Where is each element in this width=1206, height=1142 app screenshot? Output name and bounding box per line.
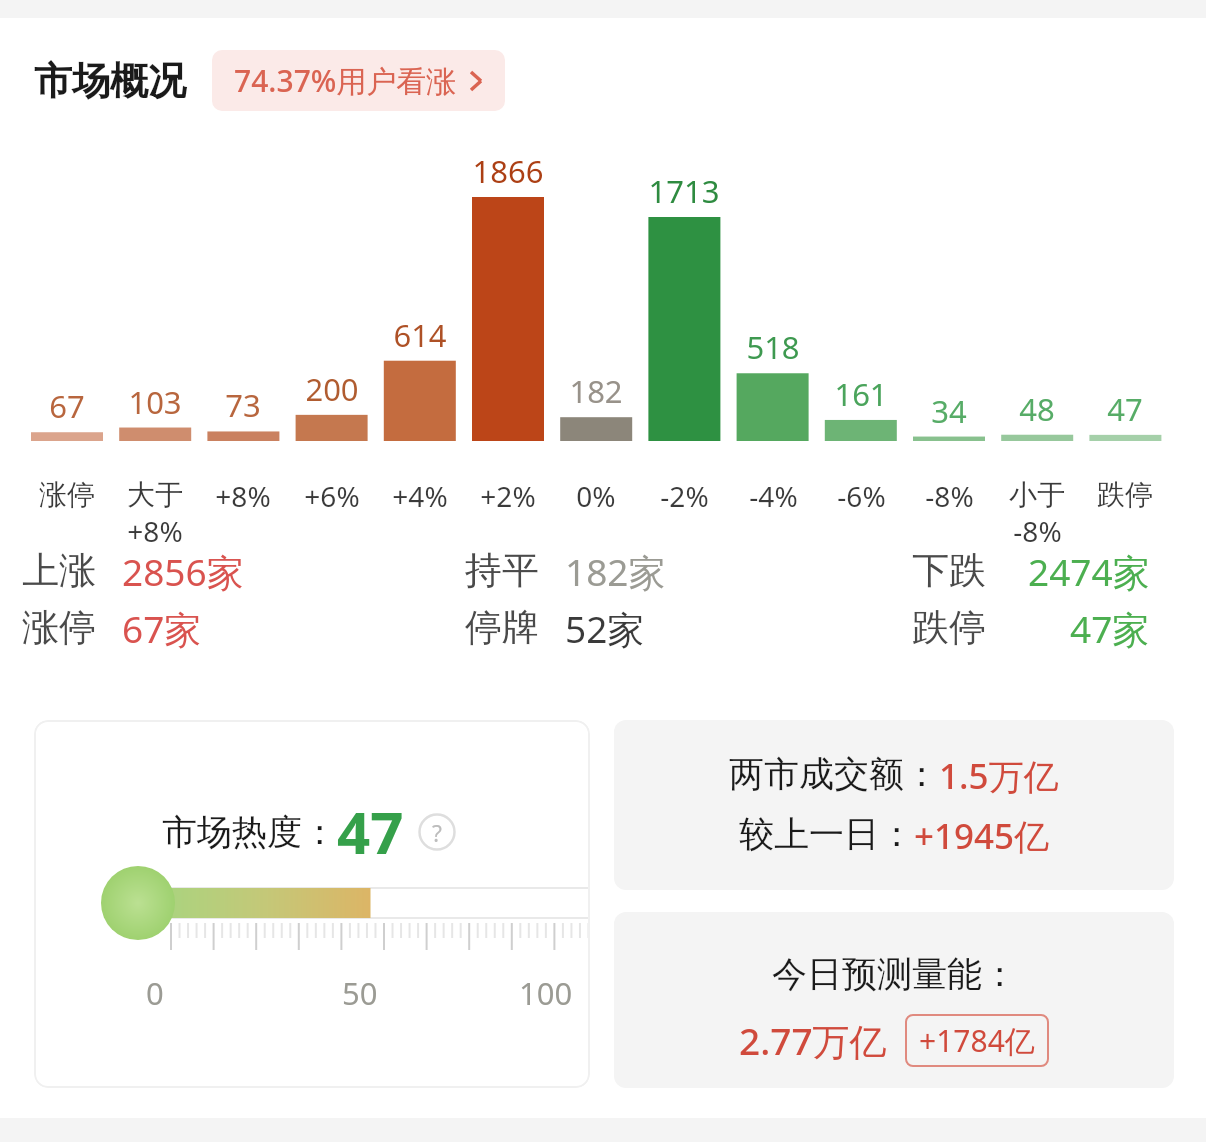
staticText: 市场概况 — [34, 57, 186, 105]
staticText: 161 — [825, 373, 897, 415]
staticText: 小于 — [1009, 477, 1065, 512]
staticText: 1.5万亿 — [939, 752, 1059, 800]
staticText: 52家 — [565, 603, 645, 651]
staticText: -2% — [660, 477, 709, 515]
button[interactable]: 市场热度： — [34, 720, 590, 1088]
staticText: +4% — [392, 477, 448, 515]
button[interactable]: 下跌 — [912, 546, 1150, 594]
staticText: 47 — [337, 792, 404, 871]
staticText: 74.37%用户看涨 — [234, 60, 457, 101]
staticText: 2474家 — [1028, 546, 1150, 594]
staticText: 0 — [146, 972, 164, 1014]
staticText: 下跌 — [912, 547, 986, 594]
staticText: 两市成交额： — [729, 752, 939, 796]
staticText: 100 — [519, 972, 573, 1014]
staticText: 较上一日： — [739, 812, 914, 856]
staticText: 市场热度： — [162, 810, 337, 854]
staticText: +1784亿 — [919, 1020, 1035, 1061]
staticText: 48 — [1001, 388, 1073, 430]
staticText: 1866 — [472, 150, 544, 192]
staticText: +2% — [480, 477, 536, 515]
staticText: 182 — [560, 370, 632, 412]
staticText: 涨停 — [22, 604, 96, 651]
staticText: -8% — [1013, 512, 1062, 550]
button[interactable]: 停牌 — [465, 603, 765, 651]
button[interactable]: 涨停 — [22, 603, 322, 651]
staticText: 今日预测量能： — [772, 952, 1017, 996]
staticText: 67家 — [122, 603, 202, 651]
button[interactable]: 74.37%用户看涨 — [212, 50, 505, 111]
staticText: 大于 — [127, 477, 183, 512]
staticText: 34 — [913, 390, 985, 432]
staticText: +8% — [215, 477, 271, 515]
staticText: 73 — [207, 384, 279, 426]
staticText: 47 — [1089, 388, 1161, 430]
staticText: -4% — [749, 477, 798, 515]
staticText: 涨停 — [39, 477, 95, 512]
button[interactable]: 上涨 — [22, 546, 322, 594]
staticText: 518 — [737, 326, 809, 368]
staticText: 2.77万亿 — [739, 1015, 887, 1066]
staticText: -6% — [837, 477, 886, 515]
button[interactable]: 今日预测量能： — [614, 912, 1174, 1088]
staticText: ? — [432, 817, 442, 848]
staticText: 614 — [384, 314, 456, 356]
staticText: +1945亿 — [914, 812, 1050, 860]
staticText: 停牌 — [465, 604, 539, 651]
staticText: +8% — [127, 512, 183, 550]
staticText: 2856家 — [122, 546, 244, 594]
staticText: 200 — [296, 368, 368, 410]
button[interactable]: 两市成交额： — [614, 720, 1174, 890]
staticText: 50 — [342, 972, 378, 1014]
staticText: +6% — [304, 477, 360, 515]
staticText: 1713 — [648, 170, 720, 212]
staticText: 上涨 — [22, 547, 96, 594]
staticText: 持平 — [465, 547, 539, 594]
staticText: 0% — [576, 477, 616, 515]
button[interactable]: 跌停 — [912, 603, 1150, 651]
button[interactable]: 说明 — [418, 813, 456, 851]
staticText: 47家 — [1070, 603, 1150, 651]
staticText: 67 — [31, 385, 103, 427]
staticText: 182家 — [565, 546, 666, 594]
staticText: -8% — [925, 477, 974, 515]
staticText: 103 — [119, 381, 191, 423]
button[interactable]: 持平 — [465, 546, 765, 594]
staticText: 跌停 — [912, 604, 986, 651]
staticText: 跌停 — [1097, 477, 1153, 512]
